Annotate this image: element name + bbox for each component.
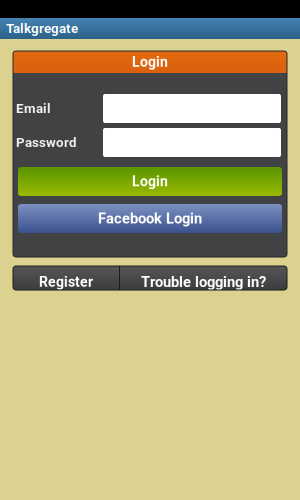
button[interactable]: Facebook Login [18,204,282,233]
button[interactable]: Trouble logging in? [120,266,287,290]
staticText: Talkgregate [6,21,78,36]
button[interactable]: Login [18,167,282,196]
staticText: Login [132,54,168,70]
button[interactable]: Register [13,266,119,290]
staticText: Login [132,173,168,190]
staticText: Register [39,274,93,290]
staticText: Facebook Login [98,210,202,227]
staticText: Email [16,101,51,116]
staticText: Password [16,135,77,150]
staticText: Trouble logging in? [141,273,266,291]
